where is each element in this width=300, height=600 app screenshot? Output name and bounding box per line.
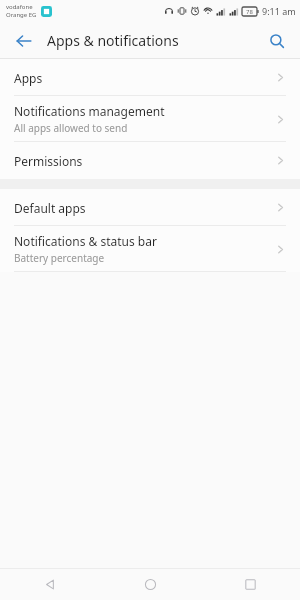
button[interactable]: Permissions bbox=[0, 142, 300, 179]
button[interactable]: Apps bbox=[0, 59, 300, 96]
staticText: Notifications management bbox=[14, 103, 165, 119]
staticText: vodafone bbox=[6, 3, 33, 11]
staticText: Apps & notifications bbox=[47, 31, 179, 50]
staticText: Apps bbox=[14, 70, 43, 86]
button[interactable]: Back bbox=[0, 569, 100, 600]
staticText: Default apps bbox=[14, 200, 86, 216]
button[interactable]: Back bbox=[9, 26, 38, 55]
button[interactable]: Recent apps bbox=[200, 569, 300, 600]
button[interactable]: Home bbox=[100, 569, 200, 600]
staticText: All apps allowed to send bbox=[14, 121, 128, 135]
button[interactable]: Notifications & status bar bbox=[0, 226, 300, 272]
staticText: Orange EG bbox=[6, 11, 37, 19]
staticText: 9:11 am bbox=[262, 5, 296, 17]
staticText: Permissions bbox=[14, 153, 83, 169]
button[interactable]: Search bbox=[262, 26, 291, 55]
button[interactable]: Notifications management bbox=[0, 96, 300, 142]
staticText: Notifications & status bar bbox=[14, 233, 157, 249]
staticText: Battery percentage bbox=[14, 251, 105, 265]
button[interactable]: Default apps bbox=[0, 189, 300, 226]
staticText: 78 bbox=[246, 8, 253, 16]
